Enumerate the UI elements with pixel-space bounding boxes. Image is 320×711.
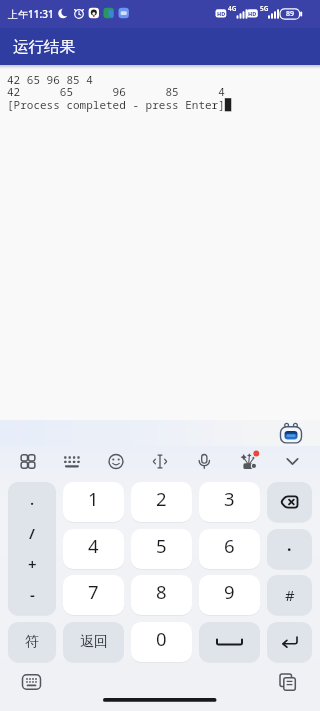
button[interactable]: 7 bbox=[63, 575, 124, 615]
staticText: HD bbox=[217, 10, 226, 17]
button[interactable] bbox=[99, 445, 133, 479]
button[interactable]: 6 bbox=[199, 529, 260, 569]
button[interactable]: 符 bbox=[8, 622, 56, 662]
staticText: 上午11:31 bbox=[8, 7, 54, 21]
button[interactable] bbox=[276, 445, 310, 479]
staticText: + bbox=[28, 554, 37, 574]
staticText: / bbox=[29, 523, 35, 543]
staticText: 返回 bbox=[80, 633, 108, 651]
button[interactable]: 8 bbox=[131, 575, 192, 615]
staticText: 0 bbox=[156, 626, 167, 651]
staticText: 5G bbox=[260, 4, 269, 12]
staticText: · bbox=[287, 538, 292, 560]
staticText: 1 bbox=[88, 486, 99, 511]
staticText: 2 bbox=[156, 486, 167, 511]
button[interactable] bbox=[14, 668, 49, 696]
button[interactable] bbox=[55, 445, 89, 479]
staticText: 42 65 96 85 4 bbox=[7, 84, 225, 99]
button[interactable]: 2 bbox=[131, 482, 192, 522]
button[interactable]: 3 bbox=[199, 482, 260, 522]
button[interactable]: · bbox=[267, 529, 312, 569]
staticText: 4G bbox=[228, 4, 237, 12]
staticText: 运行结果 bbox=[13, 37, 75, 57]
button[interactable] bbox=[11, 445, 45, 479]
staticText: 9 bbox=[224, 579, 235, 604]
staticText: 7 bbox=[88, 579, 99, 604]
button[interactable] bbox=[199, 622, 260, 662]
staticText: 4 bbox=[88, 533, 99, 558]
button[interactable]: 0 bbox=[131, 622, 192, 662]
button[interactable] bbox=[232, 445, 266, 479]
staticText: 3 bbox=[224, 486, 235, 511]
staticText: # bbox=[285, 585, 295, 605]
button[interactable]: 5 bbox=[131, 529, 192, 569]
staticText: HD bbox=[248, 10, 257, 17]
button[interactable] bbox=[267, 482, 312, 522]
staticText: 5 bbox=[156, 533, 167, 558]
staticText: 6 bbox=[224, 533, 235, 558]
staticText: 89 bbox=[286, 9, 295, 19]
button[interactable] bbox=[143, 445, 177, 479]
staticText: 42 65 96 85 4 bbox=[7, 72, 93, 87]
staticText: - bbox=[30, 584, 35, 604]
button[interactable]: # bbox=[267, 575, 312, 615]
button[interactable]: 1 bbox=[63, 482, 124, 522]
staticText: · bbox=[30, 493, 35, 513]
button[interactable] bbox=[278, 421, 304, 445]
button[interactable]: · bbox=[8, 482, 56, 615]
button[interactable]: 9 bbox=[199, 575, 260, 615]
staticText: 符 bbox=[25, 633, 39, 651]
button[interactable] bbox=[271, 668, 306, 696]
button[interactable]: 返回 bbox=[63, 622, 124, 662]
button[interactable] bbox=[267, 622, 312, 662]
staticText: [Process completed - press Enter]█ bbox=[7, 97, 232, 112]
staticText: 8 bbox=[156, 579, 167, 604]
button[interactable] bbox=[187, 445, 221, 479]
button[interactable]: 4 bbox=[63, 529, 124, 569]
